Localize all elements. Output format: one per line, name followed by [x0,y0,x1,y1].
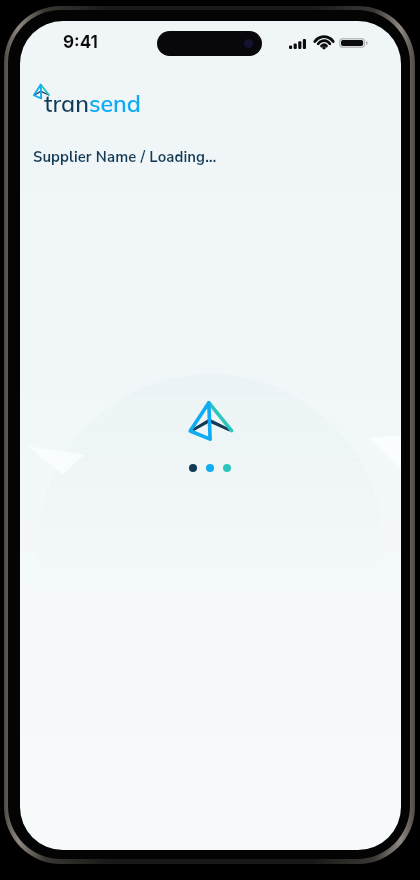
other: Transend [33,84,50,99]
staticText: Supplier Name / Loading… [33,147,217,167]
staticText: transend [44,89,141,118]
staticText: 9:41 [63,32,98,53]
